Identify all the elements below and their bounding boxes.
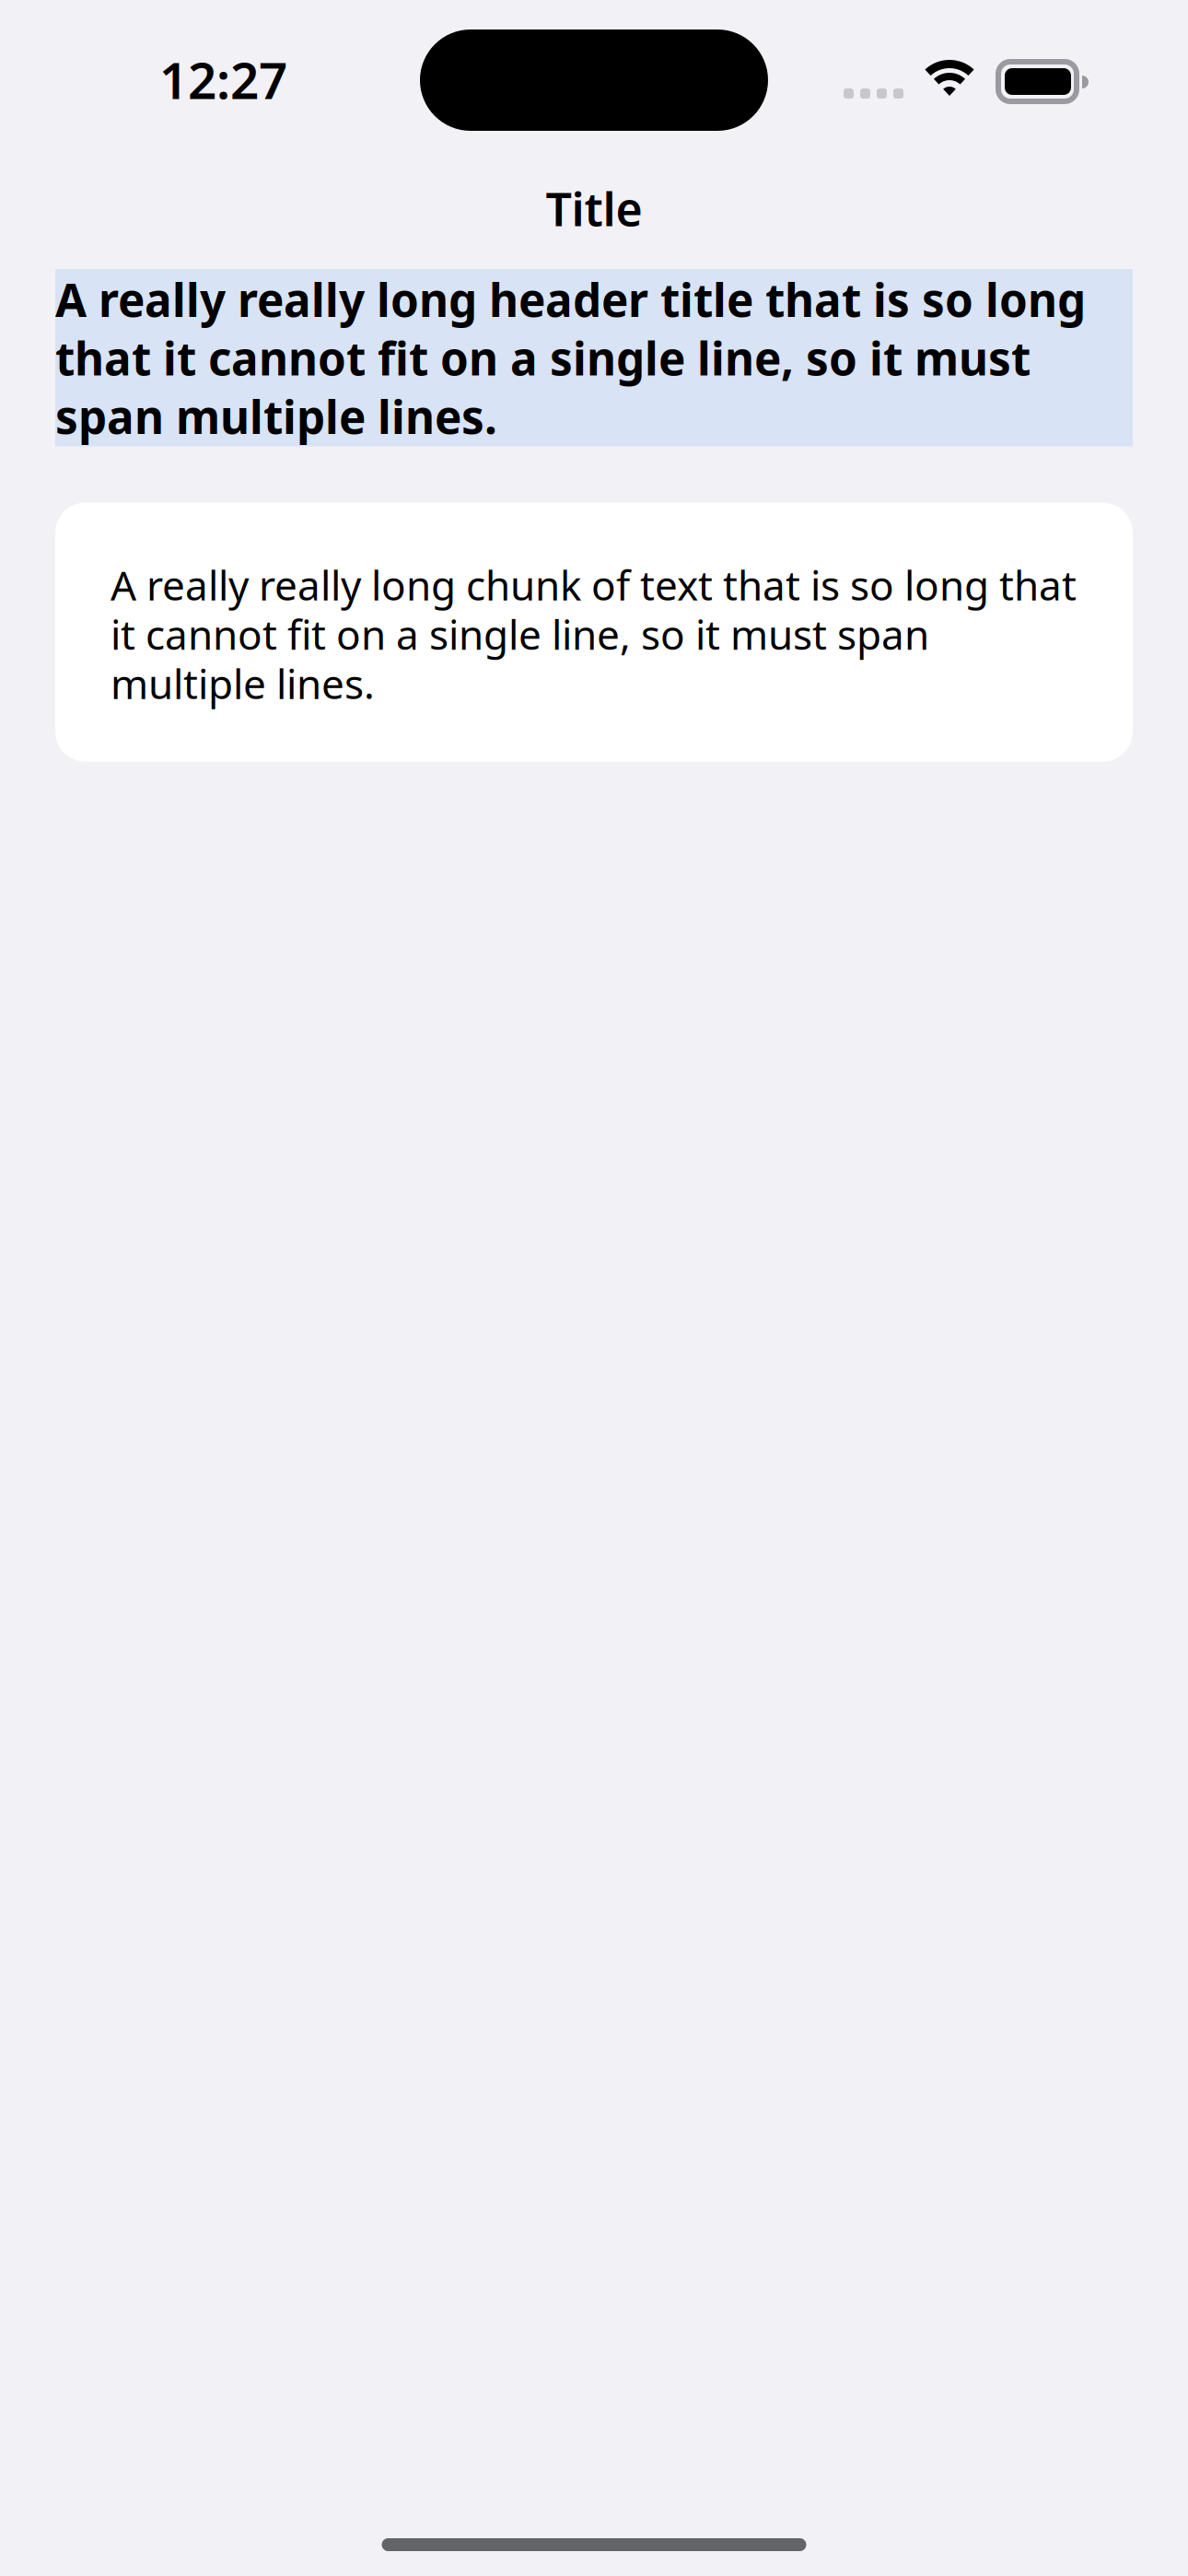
staticText: Title	[546, 177, 642, 240]
staticText: 12:27	[159, 46, 287, 113]
staticText: A really really long header title that i…	[55, 269, 1086, 446]
staticText: A really really long chunk of text that …	[111, 558, 1077, 710]
